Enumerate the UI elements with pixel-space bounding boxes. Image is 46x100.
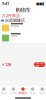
button[interactable]: 去结算 bbox=[34, 62, 45, 67]
staticText: 9:41 bbox=[2, 1, 9, 6]
staticText: ￥128 bbox=[1, 62, 11, 67]
staticText: 购物车 bbox=[15, 7, 30, 13]
staticText: 消息 bbox=[30, 91, 36, 95]
button[interactable]: 我的 bbox=[37, 86, 46, 96]
staticText: 分类 bbox=[10, 91, 16, 95]
staticText: 首页 bbox=[1, 91, 7, 95]
staticText: 去结算 bbox=[35, 60, 43, 69]
staticText: 共2件商品 bbox=[2, 13, 20, 18]
staticText: 购物车 bbox=[18, 91, 27, 95]
staticText: ◼◼▮ bbox=[36, 1, 44, 6]
button[interactable]: 消息 bbox=[28, 86, 37, 96]
staticText: 自营旗舰店 bbox=[5, 18, 25, 23]
button[interactable]: 分类 bbox=[9, 86, 18, 96]
staticText: 我的 bbox=[39, 91, 45, 95]
button[interactable]: 购物车 bbox=[18, 86, 28, 96]
button[interactable]: 首页 bbox=[0, 86, 9, 96]
